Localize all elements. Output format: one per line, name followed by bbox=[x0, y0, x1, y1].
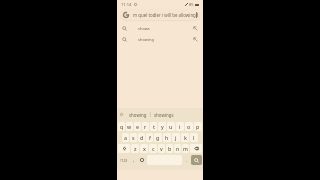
staticText: r bbox=[144, 123, 147, 130]
staticText: m quel todler i will be allowing bbox=[133, 12, 196, 18]
staticText: 11:14 bbox=[121, 2, 132, 7]
staticText: z bbox=[134, 145, 137, 152]
button[interactable]: e bbox=[134, 122, 141, 131]
button[interactable]: x bbox=[140, 144, 148, 153]
button[interactable]: d bbox=[138, 133, 145, 142]
button[interactable]: l bbox=[190, 133, 198, 142]
staticText: w bbox=[127, 123, 132, 130]
button[interactable]: q bbox=[118, 122, 125, 131]
staticText: q bbox=[120, 123, 124, 130]
staticText: m bbox=[183, 145, 188, 152]
staticText: d bbox=[140, 134, 144, 141]
button[interactable]: n bbox=[174, 144, 181, 153]
staticText: f bbox=[149, 134, 151, 141]
button[interactable]: Emoji bbox=[138, 154, 146, 166]
staticText: j bbox=[175, 134, 177, 141]
staticText: e bbox=[136, 123, 139, 130]
button[interactable]: showing bbox=[122, 34, 198, 45]
staticText: l bbox=[193, 134, 195, 141]
button[interactable]: m bbox=[182, 144, 189, 153]
staticText: . bbox=[186, 157, 188, 163]
button[interactable]: r bbox=[142, 122, 149, 131]
button[interactable]: m quel todler i will be allowing bbox=[120, 9, 200, 20]
staticText: y bbox=[161, 123, 164, 130]
button[interactable]: Search bbox=[191, 155, 202, 165]
button[interactable]: p bbox=[194, 122, 202, 131]
staticText: s bbox=[132, 134, 135, 141]
button[interactable]: o bbox=[185, 122, 193, 131]
staticText: v bbox=[160, 145, 163, 152]
staticText: k bbox=[184, 134, 187, 141]
button[interactable]: c bbox=[149, 144, 157, 153]
staticText: c bbox=[152, 145, 155, 152]
button[interactable]: w bbox=[126, 122, 133, 131]
button[interactable]: a bbox=[122, 133, 129, 142]
staticText: u bbox=[169, 123, 173, 130]
button[interactable]: i bbox=[176, 122, 184, 131]
staticText: i bbox=[179, 123, 181, 130]
button[interactable]: showing bbox=[128, 108, 148, 121]
staticText: a bbox=[124, 134, 127, 141]
staticText: showings bbox=[154, 112, 174, 118]
staticText: t bbox=[153, 123, 155, 130]
button[interactable]: f bbox=[146, 133, 153, 142]
button[interactable]: Period bbox=[183, 154, 190, 166]
button[interactable]: b bbox=[166, 144, 173, 153]
staticText: , bbox=[133, 157, 135, 163]
button[interactable]: Symbols bbox=[118, 155, 129, 165]
staticText: showing bbox=[129, 112, 147, 118]
button[interactable]: z bbox=[131, 144, 139, 153]
button[interactable]: showings bbox=[153, 108, 175, 121]
button[interactable]: u bbox=[167, 122, 175, 131]
staticText: b bbox=[168, 145, 172, 152]
staticText: showing bbox=[138, 37, 154, 42]
staticText: n bbox=[176, 145, 180, 152]
staticText: ?123 bbox=[120, 158, 128, 163]
button[interactable]: y bbox=[158, 122, 166, 131]
button[interactable]: Comma bbox=[130, 154, 137, 166]
button[interactable]: Backspace bbox=[190, 144, 202, 153]
button[interactable]: j bbox=[172, 133, 180, 142]
button[interactable]: shows bbox=[122, 23, 198, 34]
button[interactable]: v bbox=[158, 144, 165, 153]
button[interactable]: t bbox=[150, 122, 157, 131]
staticText: g bbox=[156, 134, 160, 141]
button[interactable]: s bbox=[130, 133, 137, 142]
staticText: h bbox=[165, 134, 169, 141]
staticText: shows bbox=[138, 26, 150, 31]
button[interactable]: k bbox=[181, 133, 189, 142]
staticText: p bbox=[196, 123, 200, 130]
button[interactable]: h bbox=[163, 133, 171, 142]
staticText: x bbox=[143, 145, 146, 152]
button[interactable]: g bbox=[154, 133, 162, 142]
button[interactable]: Shift bbox=[118, 144, 130, 153]
staticText: o bbox=[187, 123, 191, 130]
staticText: 85 bbox=[189, 2, 194, 7]
